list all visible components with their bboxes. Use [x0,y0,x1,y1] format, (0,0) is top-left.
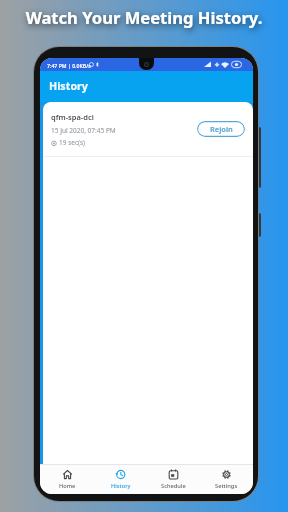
button[interactable]: Settings [200,465,253,494]
staticText: Rejoin [210,124,233,134]
staticText: qfm-spa-dci [51,112,94,122]
staticText: Watch Your Meeting History. [0,6,288,29]
button[interactable]: History [94,465,147,494]
button[interactable]: Home [40,465,94,494]
staticText: 7:47 PM | 0.0KB/s [47,62,91,69]
button[interactable]: Schedule [147,465,200,494]
staticText: 15 Jul 2020, 07:45 PM [51,126,116,135]
staticText: Home [59,482,76,490]
staticText: History [111,482,131,490]
staticText: History [49,79,88,94]
staticText: 19 sec(s) [59,138,86,147]
button[interactable]: qfm-spa-dci [43,102,253,157]
staticText: Schedule [161,482,186,490]
button[interactable]: Rejoin [197,121,245,137]
staticText: Settings [215,482,238,490]
